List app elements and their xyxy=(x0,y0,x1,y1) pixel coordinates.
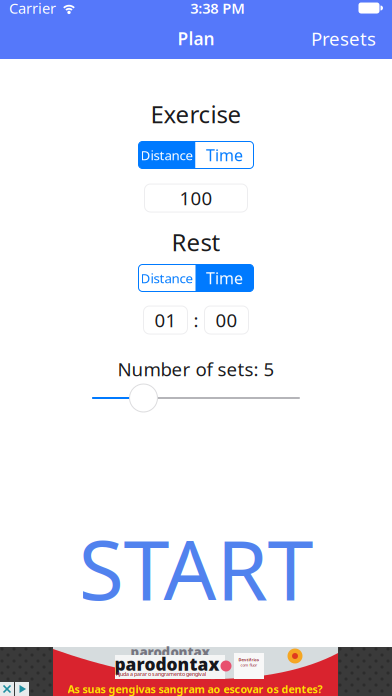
staticText: Presets xyxy=(311,26,376,51)
button[interactable]: START xyxy=(78,513,313,623)
staticText: Time xyxy=(206,267,243,289)
staticText: Time xyxy=(206,144,243,166)
button[interactable]: Distance xyxy=(138,264,195,291)
staticText: : xyxy=(193,308,198,332)
staticText: START xyxy=(78,513,313,623)
staticText: 01 xyxy=(154,308,176,332)
staticText: As suas gengivas sangram ao escovar os d… xyxy=(67,682,322,696)
button[interactable]: 01 xyxy=(143,306,187,334)
button[interactable]: Presets xyxy=(303,20,384,57)
button[interactable]: 100 xyxy=(144,184,247,212)
staticText: Rest xyxy=(171,226,220,258)
staticText: Plan xyxy=(177,27,214,50)
staticText: com fluor xyxy=(240,662,257,668)
staticText: 00 xyxy=(215,308,237,332)
staticText: parodontax xyxy=(114,652,219,675)
staticText: 100 xyxy=(179,186,212,210)
staticText: Carrier xyxy=(9,0,56,18)
staticText: parodontax xyxy=(130,643,209,661)
staticText: Distance xyxy=(140,269,193,287)
staticText: Distance xyxy=(140,146,193,164)
staticText: 3:38 PM xyxy=(190,0,245,18)
button[interactable]: Time xyxy=(195,264,253,291)
button[interactable]: Distance xyxy=(138,141,195,168)
staticText: Exercise xyxy=(150,98,241,130)
button[interactable]: 00 xyxy=(204,306,248,334)
staticText: Number of sets: 5 xyxy=(117,357,274,381)
button[interactable]: Time xyxy=(195,141,253,168)
staticText: Ajuda a parar o sangramento gengival xyxy=(116,670,206,678)
staticText: Dentifrico xyxy=(238,657,259,662)
